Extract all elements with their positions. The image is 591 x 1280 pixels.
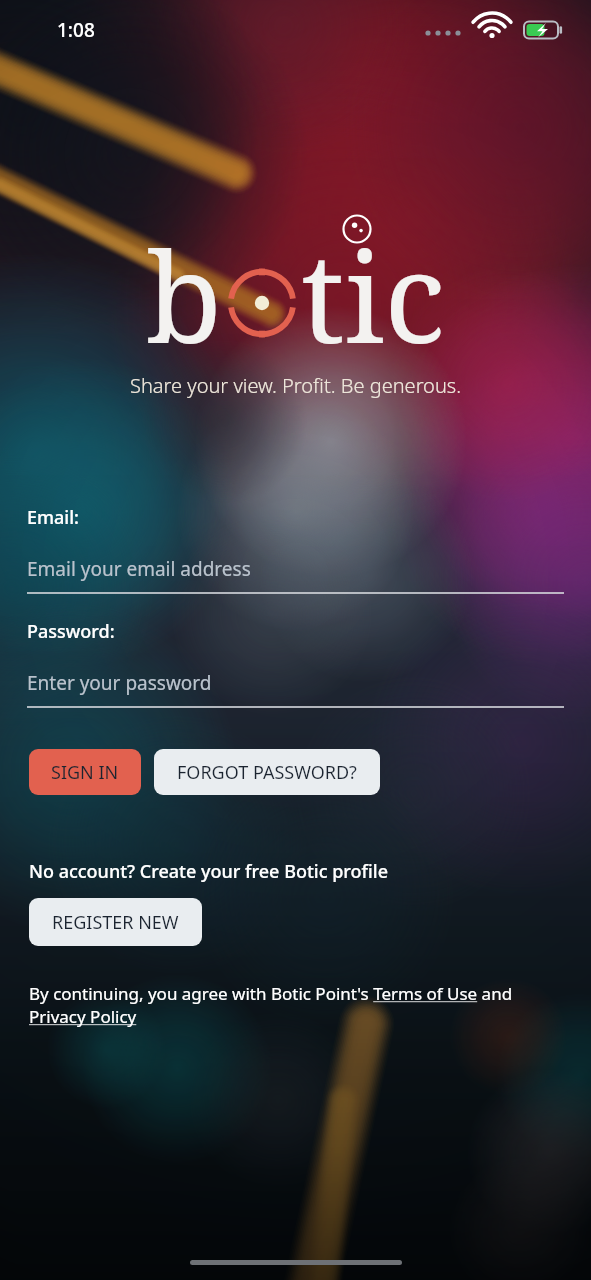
button[interactable]: FORGOT PASSWORD? bbox=[154, 749, 380, 795]
staticText: Email your email address bbox=[27, 556, 251, 582]
staticText: SIGN IN bbox=[51, 760, 119, 785]
button[interactable]: REGISTER NEW bbox=[29, 898, 202, 946]
staticText: b bbox=[146, 210, 223, 360]
staticText: REGISTER NEW bbox=[52, 910, 179, 935]
staticText: By continuing, you agree with Botic Poin… bbox=[29, 982, 571, 1028]
staticText: 1:08 bbox=[57, 17, 95, 43]
button[interactable]: Email your email address bbox=[27, 556, 564, 582]
staticText: No account? Create your free Botic profi… bbox=[29, 859, 389, 884]
staticText: Email: bbox=[27, 505, 79, 530]
button[interactable]: SIGN IN bbox=[29, 749, 141, 795]
staticText: Password: bbox=[27, 619, 115, 644]
button[interactable]: Enter your password bbox=[27, 670, 564, 696]
staticText: tic bbox=[301, 210, 446, 360]
staticText: FORGOT PASSWORD? bbox=[177, 760, 357, 785]
button[interactable]: By continuing, you agree with Botic Poin… bbox=[29, 982, 571, 1028]
staticText: Share your view. Profit. Be generous. bbox=[130, 372, 462, 399]
staticText: Enter your password bbox=[27, 670, 212, 696]
